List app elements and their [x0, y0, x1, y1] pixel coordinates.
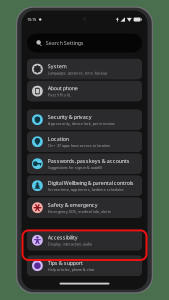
button[interactable]: Security & privacy [27, 109, 142, 130]
button[interactable]: Passwords, passkeys & accounts [27, 153, 142, 174]
staticText: Location [48, 135, 69, 142]
staticText: 10:15 [27, 17, 36, 22]
button[interactable]: Digital Wellbeing & parental controls [27, 175, 142, 196]
staticText: Passwords, passkeys & accounts [48, 157, 130, 164]
staticText: System [48, 63, 67, 70]
button[interactable]: Accessibility [27, 230, 142, 251]
staticText: Display, interaction, audio [48, 241, 92, 247]
staticText: Security & privacy [48, 113, 92, 120]
button[interactable]: System [27, 59, 142, 79]
button[interactable]: Safety & emergency [27, 197, 142, 218]
staticText: Digital Wellbeing & parental controls [48, 179, 134, 186]
staticText: Accessibility [48, 234, 78, 241]
button[interactable]: Location [27, 131, 142, 152]
staticText: Languages, gestures, time, backup [48, 70, 107, 75]
staticText: About phone [48, 85, 78, 92]
staticText: Pixel 9 Pro XL [48, 92, 71, 97]
staticText: Safety & emergency [48, 201, 98, 208]
staticText: Screen time, app timers, bedtime schedul… [48, 187, 124, 192]
staticText: Tips & support [48, 259, 83, 266]
staticText: Suggestions for sign-in & autofill [48, 165, 102, 170]
staticText: On • 37 apps have access to location [48, 143, 110, 148]
staticText: Search Settings [46, 39, 84, 47]
button[interactable]: Tips & support [27, 255, 142, 276]
button[interactable]: Search Settings [27, 33, 142, 52]
staticText: Emergency SOS, medical info, alerts [48, 209, 111, 214]
button[interactable]: About phone [27, 81, 142, 101]
staticText: Help articles, phone & chat [48, 267, 94, 272]
staticText: App security, device lock, permissions [48, 121, 115, 126]
